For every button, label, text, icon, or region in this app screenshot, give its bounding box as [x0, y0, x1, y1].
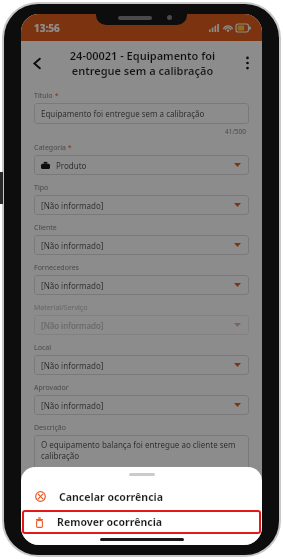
staticText: Local [34, 343, 51, 353]
staticText: [Não informado] [41, 400, 234, 411]
button[interactable]: [Não informado] [34, 275, 249, 295]
button[interactable]: [Não informado] [34, 355, 249, 375]
button[interactable]: Voltar [21, 47, 53, 79]
staticText: Título [34, 91, 53, 101]
staticText: [Não informado] [41, 280, 234, 291]
staticText: * [66, 143, 72, 153]
staticText: Categoria [34, 143, 66, 153]
staticText: Descrição [34, 423, 66, 433]
staticText: Cancelar ocorrência [59, 490, 164, 504]
button[interactable]: Produto [34, 155, 249, 175]
staticText: Produto [56, 160, 234, 171]
staticText: O equipamento balança foi entregue ao cl… [41, 439, 242, 461]
staticText: Cliente [34, 223, 57, 233]
staticText: Fornecedores [34, 263, 79, 273]
staticText: * [53, 91, 59, 101]
button[interactable]: Cancelar ocorrência [21, 485, 262, 508]
button[interactable]: [Não informado] [34, 395, 249, 415]
staticText: [Não informado] [41, 240, 234, 251]
staticText: Aprovador [34, 383, 69, 393]
button[interactable]: Mais opções [232, 48, 262, 78]
button[interactable]: Equipamento foi entregue sem a calibraçã… [34, 103, 249, 124]
button[interactable]: [Não informado] [34, 315, 249, 335]
staticText: Remover ocorrência [57, 515, 163, 529]
staticText: [Não informado] [41, 320, 234, 331]
staticText: [Não informado] [41, 360, 234, 371]
staticText: 24-00021 - Equipamento foi entregue sem … [53, 48, 232, 78]
staticText: Tipo [34, 183, 49, 193]
staticText: 41/500 [225, 127, 247, 136]
staticText: [Não informado] [41, 200, 234, 211]
staticText: Material/Serviço [34, 303, 88, 313]
button[interactable]: O equipamento balança foi entregue ao cl… [34, 435, 249, 475]
button[interactable]: Remover ocorrência [22, 510, 261, 534]
button[interactable]: [Não informado] [34, 235, 249, 255]
button[interactable]: [Não informado] [34, 195, 249, 215]
staticText: Equipamento foi entregue sem a calibraçã… [41, 108, 205, 119]
staticText: 13:56 [34, 21, 60, 35]
